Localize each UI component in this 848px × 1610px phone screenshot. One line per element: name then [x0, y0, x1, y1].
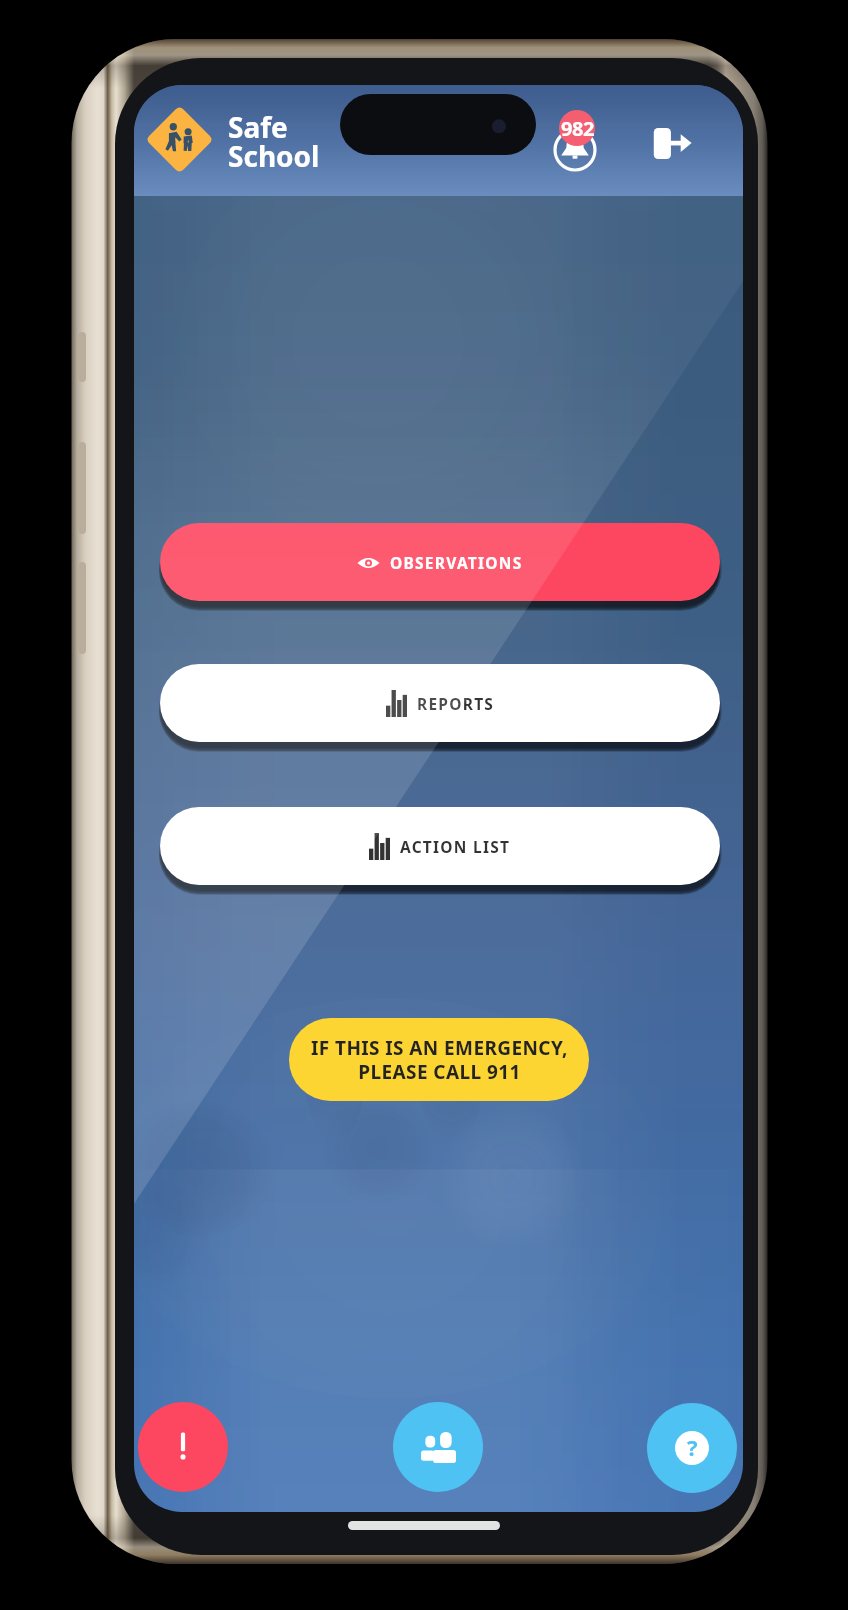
staticText: ACTION LIST: [400, 836, 511, 857]
button[interactable]: Emergency alert: [138, 1402, 228, 1492]
button[interactable]: IF THIS IS AN EMERGENCY, PLEASE CALL 911: [289, 1018, 589, 1101]
button[interactable]: OBSERVATIONS: [160, 523, 720, 601]
staticText: IF THIS IS AN EMERGENCY, PLEASE CALL 911: [311, 1035, 568, 1084]
button[interactable]: Notifications: [539, 101, 611, 173]
staticText: REPORTS: [417, 693, 495, 714]
button[interactable]: Contacts: [393, 1402, 483, 1492]
button[interactable]: Help: [647, 1403, 737, 1493]
staticText: Safe School: [228, 108, 320, 175]
staticText: ?: [687, 1432, 698, 1462]
button[interactable]: ACTION LIST: [160, 807, 720, 885]
staticText: OBSERVATIONS: [390, 552, 523, 573]
button[interactable]: REPORTS: [160, 664, 720, 742]
button[interactable]: Log out: [653, 124, 692, 163]
staticText: 982: [561, 115, 594, 142]
